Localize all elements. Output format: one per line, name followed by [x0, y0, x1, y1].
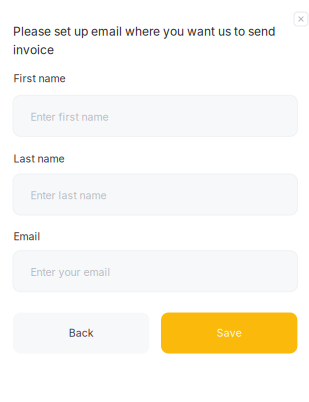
staticText: Enter your email — [30, 266, 110, 278]
button[interactable]: Save — [161, 312, 297, 353]
staticText: Enter last name — [30, 189, 106, 202]
button[interactable]: Close — [294, 12, 308, 26]
staticText: First name — [13, 72, 65, 85]
button[interactable]: Back — [13, 312, 149, 353]
staticText: Please set up email where you want us to… — [13, 24, 275, 57]
staticText: Email — [13, 230, 40, 243]
staticText: Enter first name — [30, 110, 108, 123]
staticText: Last name — [13, 152, 64, 165]
staticText: Save — [217, 327, 242, 339]
staticText: Back — [69, 327, 94, 339]
